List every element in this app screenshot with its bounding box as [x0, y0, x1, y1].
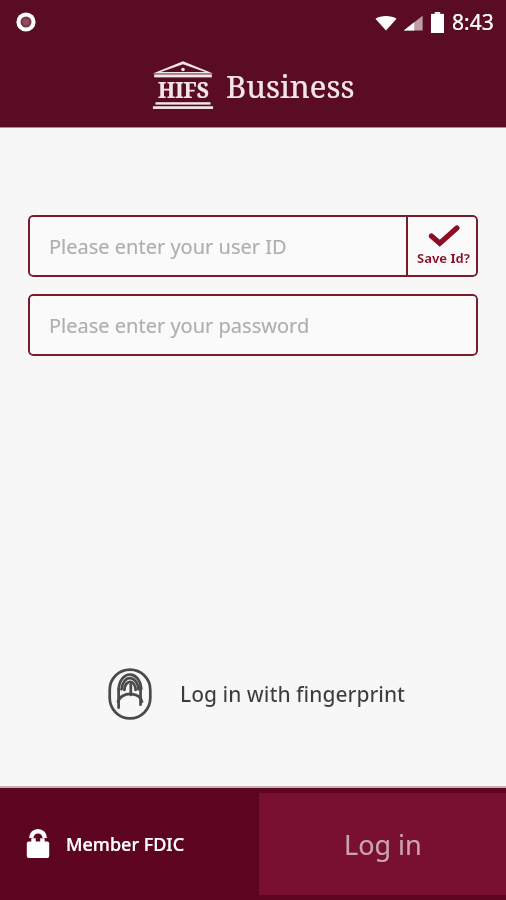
staticText: 8:43 [452, 8, 494, 37]
staticText: Log in with fingerprint [180, 680, 406, 709]
button[interactable]: Log in [259, 793, 506, 895]
button[interactable]: Save Id? [408, 215, 478, 277]
staticText: Log in [344, 826, 422, 863]
staticText: Save Id? [417, 249, 470, 267]
button[interactable]: Please enter your password [28, 294, 478, 356]
staticText: HIFS [158, 76, 209, 105]
other: Log in with fingerprint [101, 665, 159, 723]
staticText: Business [226, 65, 355, 107]
button[interactable]: Please enter your user ID [28, 215, 406, 277]
button[interactable]: Member FDIC [0, 788, 259, 900]
staticText: Please enter your user ID [49, 233, 287, 260]
staticText: Member FDIC [66, 832, 185, 857]
staticText: Please enter your password [49, 312, 310, 339]
button[interactable]: Log in with fingerprint [0, 665, 506, 723]
